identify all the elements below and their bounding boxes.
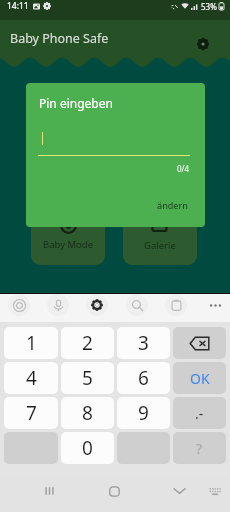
- button[interactable]: Settings: [192, 33, 214, 55]
- button[interactable]: .-: [173, 397, 226, 429]
- button[interactable]: ändern: [149, 193, 196, 217]
- button[interactable]: 9: [117, 397, 170, 429]
- staticText: Pin eingeben: [39, 95, 113, 111]
- staticText: 3: [138, 330, 149, 356]
- button[interactable]: Recents: [34, 476, 64, 506]
- button[interactable]: 7: [4, 397, 58, 429]
- button[interactable]: 8: [61, 397, 114, 429]
- button[interactable]: 6: [117, 362, 170, 394]
- button[interactable]: 3: [117, 327, 170, 359]
- button[interactable]: OK: [173, 362, 226, 394]
- staticText: 8: [82, 400, 93, 426]
- staticText: ?: [196, 439, 203, 458]
- staticText: 14:11: [7, 0, 29, 12]
- button[interactable]: Search: [126, 294, 148, 316]
- button[interactable]: Clipboard: [165, 294, 187, 316]
- button[interactable]: Switch keyboard: [200, 476, 230, 506]
- button[interactable]: Keyboard settings: [86, 294, 108, 316]
- button[interactable]: Home: [99, 476, 129, 506]
- staticText: 5: [82, 365, 93, 391]
- staticText: 0: [82, 435, 93, 461]
- button[interactable]: 4: [4, 362, 58, 394]
- staticText: 6: [138, 365, 149, 391]
- staticText: 53%: [201, 1, 217, 12]
- button[interactable]: 1: [4, 327, 58, 359]
- staticText: Galerie: [144, 239, 176, 252]
- staticText: .-: [195, 404, 204, 423]
- button[interactable]: Baby Mode: [31, 203, 105, 265]
- button[interactable]: 2: [61, 327, 114, 359]
- button[interactable]: 0: [61, 432, 114, 464]
- staticText: 2: [82, 330, 93, 356]
- staticText: 4: [26, 365, 37, 391]
- button[interactable]: Backspace: [173, 327, 226, 359]
- button[interactable]: 5: [61, 362, 114, 394]
- staticText: 0/4: [177, 163, 190, 174]
- staticText: OK: [190, 369, 210, 388]
- button[interactable]: ?: [173, 432, 226, 464]
- button[interactable]: Emoji: [8, 294, 30, 316]
- button[interactable]: Galerie: [123, 203, 197, 265]
- staticText: ändern: [157, 199, 188, 211]
- staticText: 1: [26, 330, 37, 356]
- button[interactable]: Voice input: [47, 294, 69, 316]
- staticText: 9: [138, 400, 149, 426]
- button[interactable]: More options: [204, 294, 226, 316]
- staticText: 7: [26, 400, 37, 426]
- button[interactable]: Back: [164, 476, 194, 506]
- staticText: Baby Mode: [43, 238, 94, 251]
- staticText: Baby Phone Safe: [10, 30, 109, 47]
